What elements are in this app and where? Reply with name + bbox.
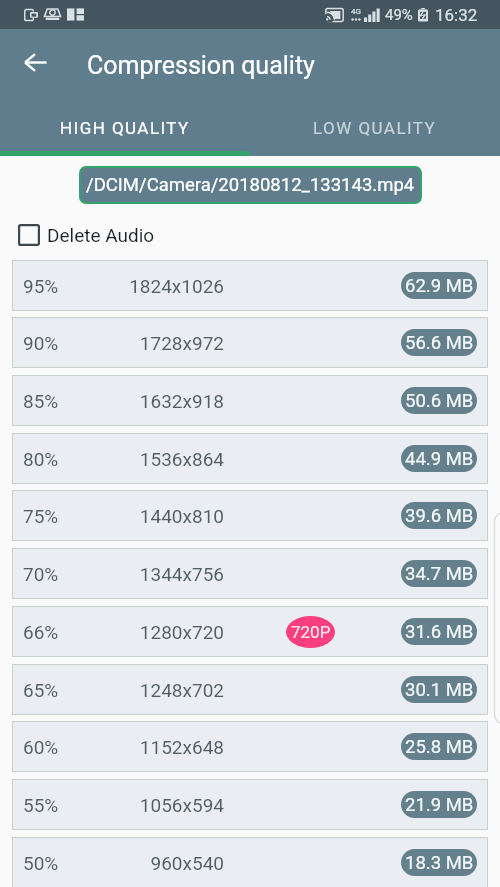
staticText: 39.6 MB	[405, 505, 474, 527]
button[interactable]: 50%	[12, 837, 488, 887]
staticText: 80%	[23, 448, 59, 470]
staticText: 1152x648	[102, 736, 224, 758]
staticText: 1728x972	[102, 332, 224, 354]
staticText: 65%	[23, 679, 59, 701]
staticText: 31.6 MB	[405, 621, 474, 643]
staticText: 960x540	[102, 852, 224, 874]
button[interactable]: Navigate up	[0, 29, 71, 96]
button[interactable]: LOW QUALITY	[250, 104, 500, 151]
staticText: 18.3 MB	[405, 852, 474, 874]
button[interactable]: 75%	[12, 490, 488, 541]
button[interactable]: 90%	[12, 317, 488, 368]
button[interactable]: 85%	[12, 375, 488, 426]
staticText: 44.9 MB	[405, 448, 474, 470]
staticText: /DCIM/Camera/20180812_133143.mp4	[86, 174, 415, 196]
staticText: 1632x918	[102, 390, 224, 412]
staticText: 85%	[23, 390, 59, 412]
button[interactable]: 95%	[12, 260, 488, 311]
button[interactable]: 70%	[12, 548, 488, 599]
staticText: 1536x864	[102, 448, 224, 470]
staticText: 1344x756	[102, 563, 224, 585]
staticText: 55%	[23, 794, 59, 816]
staticText: 1824x1026	[102, 275, 224, 297]
staticText: LOW QUALITY	[313, 118, 437, 138]
staticText: 34.7 MB	[405, 563, 474, 585]
button[interactable]: 55%	[12, 779, 488, 830]
staticText: 720P	[291, 622, 331, 642]
staticText: 75%	[23, 505, 59, 527]
staticText: 90%	[23, 332, 59, 354]
button[interactable]: Delete Audio	[18, 218, 155, 251]
button[interactable]: HIGH QUALITY	[0, 104, 250, 151]
staticText: 16:32	[435, 5, 478, 25]
staticText: 49%	[385, 6, 413, 24]
button[interactable]: /DCIM/Camera/20180812_133143.mp4	[81, 168, 420, 202]
button[interactable]: 66%	[12, 606, 488, 657]
staticText: 4G	[351, 7, 361, 16]
staticText: 1056x594	[102, 794, 224, 816]
staticText: 56.6 MB	[405, 332, 474, 354]
staticText: 60%	[23, 736, 59, 758]
staticText: 1280x720	[102, 621, 224, 643]
staticText: 62.9 MB	[405, 275, 474, 297]
staticText: Delete Audio	[47, 224, 155, 246]
staticText: 50.6 MB	[405, 390, 474, 412]
staticText: 50%	[23, 852, 59, 874]
staticText: 21.9 MB	[405, 794, 474, 816]
staticText: 95%	[23, 275, 59, 297]
staticText: 25.8 MB	[405, 736, 474, 758]
staticText: Compression quality	[87, 51, 315, 80]
staticText: HIGH QUALITY	[60, 118, 190, 138]
button[interactable]: 80%	[12, 433, 488, 484]
button[interactable]: 60%	[12, 721, 488, 772]
staticText: 30.1 MB	[405, 679, 474, 701]
button[interactable]: 65%	[12, 664, 488, 715]
staticText: 70%	[23, 563, 59, 585]
staticText: 1440x810	[102, 505, 224, 527]
staticText: 66%	[23, 621, 59, 643]
staticText: 1248x702	[102, 679, 224, 701]
